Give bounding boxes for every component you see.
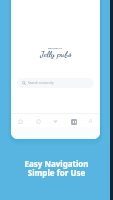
button[interactable]: Home [14, 115, 27, 128]
staticText: Search a new city [28, 81, 54, 85]
staticText: Easy Navigation Simple for Use [24, 158, 89, 179]
staticText: welcome to [48, 46, 63, 49]
button[interactable]: Search a new city [17, 78, 94, 88]
staticText: Jelly pubs [40, 49, 72, 60]
button[interactable]: Favourites [49, 115, 62, 128]
button[interactable]: Profile [84, 115, 97, 128]
button[interactable]: Explore [32, 115, 45, 128]
button[interactable]: Bookings [67, 115, 80, 128]
